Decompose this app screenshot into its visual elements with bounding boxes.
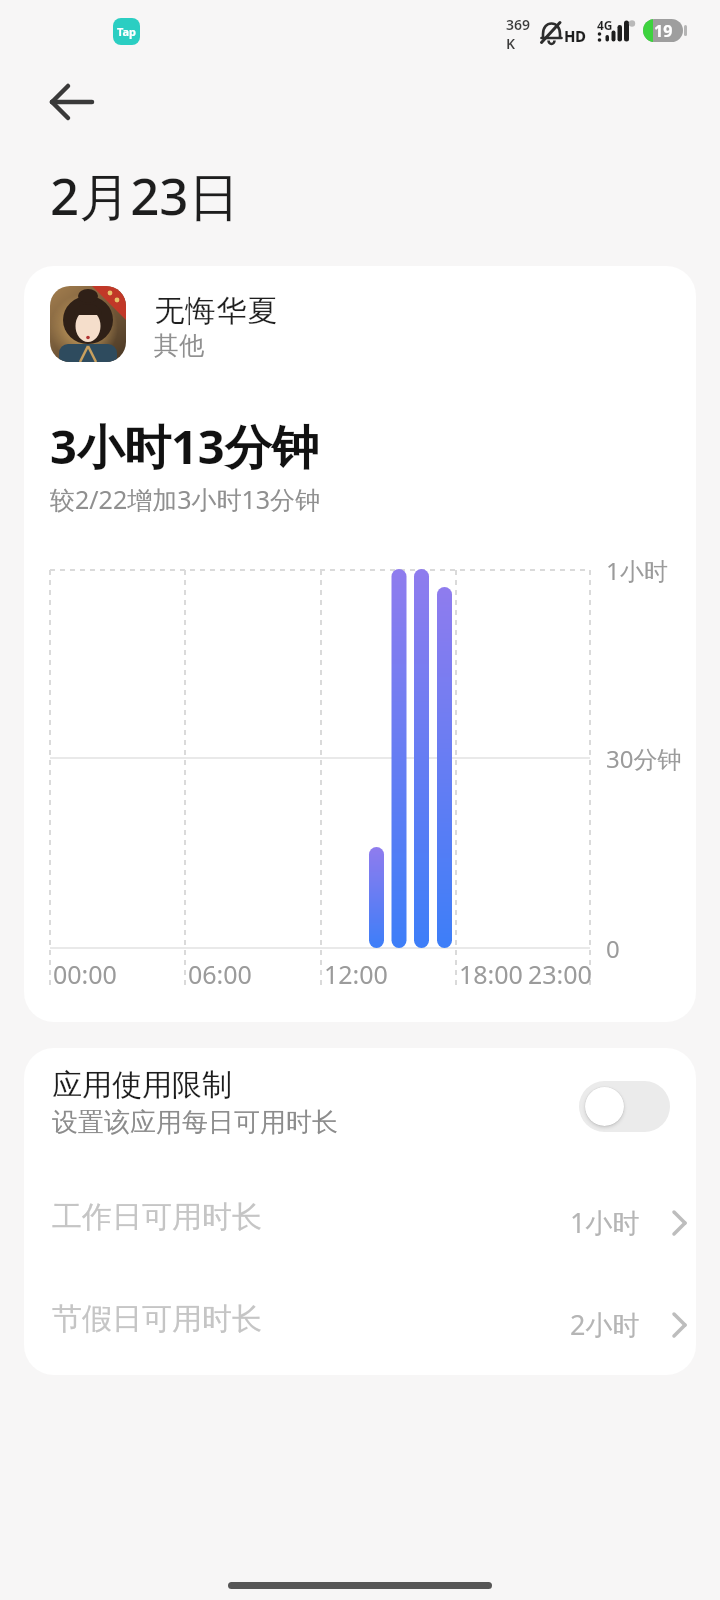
staticText: 节假日可用时长 [52, 1300, 262, 1338]
button[interactable] [44, 76, 96, 126]
staticText: 00:00 [53, 957, 117, 991]
staticText: 12:00 [324, 957, 388, 991]
staticText: 2月23日 [50, 160, 240, 230]
staticText: 4G [597, 17, 613, 33]
staticText: 应用使用限制 [52, 1066, 232, 1104]
staticText: 369 [506, 15, 531, 34]
button[interactable] [579, 1081, 670, 1132]
staticText: 06:00 [188, 957, 252, 991]
staticText: 2小时 [570, 1306, 640, 1343]
staticText: HD [564, 26, 586, 46]
button[interactable]: 工作日可用时长 [24, 1168, 696, 1264]
staticText: 23:00 [528, 957, 592, 991]
staticText: 其他 [154, 330, 204, 361]
staticText: 1小时 [570, 1204, 640, 1241]
staticText: 18:00 [459, 957, 523, 991]
staticText: Tap [117, 24, 137, 39]
staticText: 1小时 [606, 554, 668, 587]
staticText: K [506, 34, 516, 53]
staticText: 19 [654, 20, 673, 42]
button[interactable]: 节假日可用时长 [24, 1270, 696, 1366]
staticText: 30分钟 [606, 742, 682, 775]
staticText: 0 [606, 932, 620, 965]
staticText: 无悔华夏 [154, 292, 278, 330]
staticText: 设置该应用每日可用时长 [52, 1106, 338, 1139]
staticText: 工作日可用时长 [52, 1198, 262, 1236]
staticText: 较2/22增加3小时13分钟 [50, 482, 321, 516]
staticText: 3小时13分钟 [50, 414, 319, 478]
